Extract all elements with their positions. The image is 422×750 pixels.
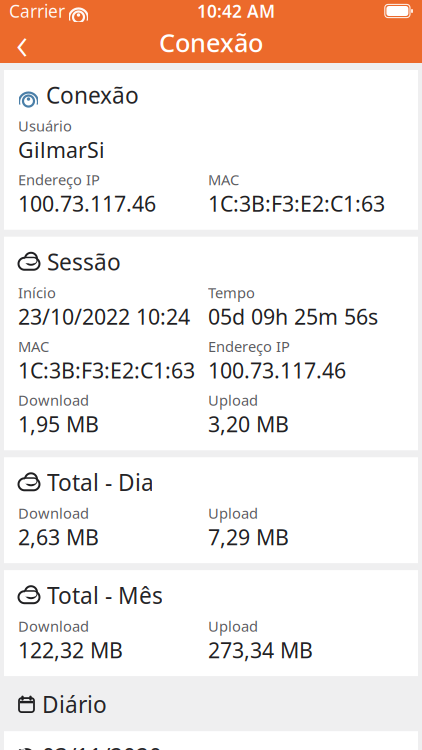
staticText: Sessão [47, 247, 121, 277]
staticText: 1C:3B:F3:E2:C1:63 [18, 356, 195, 384]
staticText: Endereço IP [18, 170, 100, 189]
staticText: 100.73.117.46 [18, 189, 156, 218]
staticText: Tempo [208, 283, 255, 302]
staticText: Conexão [46, 80, 139, 110]
button[interactable]: Sessão [4, 237, 418, 450]
staticText: 23/10/2022 10:24 [18, 302, 190, 331]
staticText: 1C:3B:F3:E2:C1:63 [208, 189, 385, 218]
staticText: 273,34 MB [208, 636, 313, 664]
staticText: Diário [42, 689, 107, 719]
staticText: 03/11/2020 [42, 741, 162, 750]
staticText: 2,63 MB [18, 523, 99, 551]
staticText: Upload [208, 503, 258, 523]
staticText: Upload [208, 616, 258, 636]
staticText: GilmarSi [18, 136, 105, 164]
staticText: 3,20 MB [208, 410, 289, 438]
staticText: 122,32 MB [18, 636, 123, 664]
button[interactable]: Total - Dia [4, 457, 418, 563]
staticText: Download [18, 616, 89, 636]
staticText: Upload [208, 390, 258, 410]
staticText: Download [18, 503, 89, 523]
staticText: Download [18, 390, 89, 410]
staticText: Início [18, 283, 56, 302]
staticText: Total - Mês [47, 580, 163, 610]
staticText: MAC [208, 170, 239, 189]
staticText: Total - Dia [47, 467, 154, 497]
staticText: 10:42 AM [197, 0, 275, 22]
staticText: 100.73.117.46 [208, 356, 346, 384]
staticText: 7,29 MB [208, 523, 289, 551]
button[interactable]: Back [0, 22, 44, 63]
staticText: Carrier [9, 0, 65, 22]
button[interactable]: Conexão [4, 70, 418, 230]
staticText: Endereço IP [208, 337, 290, 356]
staticText: ‹ [16, 12, 28, 73]
button[interactable]: Total - Mês [4, 570, 418, 676]
staticText: 05d 09h 25m 56s [208, 302, 378, 331]
staticText: MAC [18, 337, 49, 356]
button[interactable]: 03/11/2020 [4, 731, 418, 750]
staticText: Conexão [159, 26, 263, 59]
staticText: 1,95 MB [18, 410, 99, 438]
staticText: Usuário [18, 116, 72, 136]
